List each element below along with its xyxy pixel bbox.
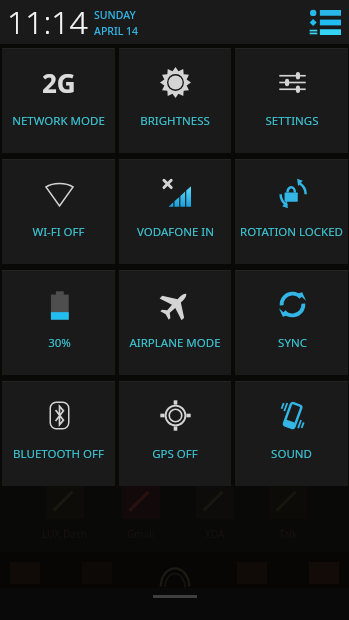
- button[interactable]: WI-FI OFF: [2, 159, 115, 264]
- staticText: BRIGHTNESS: [140, 113, 210, 129]
- staticText: 30%: [48, 335, 71, 351]
- staticText: 2G: [42, 65, 76, 100]
- staticText: GPS OFF: [152, 446, 198, 462]
- staticText: LUX Dash: [42, 527, 87, 541]
- staticText: ROTATION LOCKED: [240, 224, 343, 240]
- staticText: APRIL 14: [94, 24, 138, 38]
- button[interactable]: GPS OFF: [119, 381, 231, 486]
- button[interactable]: ROTATION LOCKED: [235, 159, 348, 264]
- button[interactable]: Notifications: [306, 2, 344, 42]
- staticText: BLUETOOTH OFF: [13, 446, 104, 462]
- button[interactable]: SYNC: [235, 270, 348, 375]
- staticText: 11:14: [7, 0, 88, 44]
- button[interactable]: 30%: [2, 270, 115, 375]
- staticText: XDA: [205, 527, 225, 541]
- button[interactable]: SOUND: [235, 381, 348, 486]
- button[interactable]: 2G: [2, 48, 115, 153]
- staticText: SUNDAY: [94, 8, 136, 22]
- button[interactable]: BLUETOOTH OFF: [2, 381, 115, 486]
- staticText: AIRPLANE MODE: [129, 335, 221, 351]
- staticText: WI-FI OFF: [32, 224, 85, 240]
- button[interactable]: BRIGHTNESS: [119, 48, 231, 153]
- staticText: SYNC: [278, 335, 307, 351]
- staticText: VODAFONE IN: [137, 224, 214, 240]
- staticText: Gmail: [127, 527, 155, 541]
- staticText: SETTINGS: [265, 113, 319, 129]
- staticText: SOUND: [271, 446, 312, 462]
- staticText: NETWORK MODE: [12, 113, 105, 129]
- button[interactable]: VODAFONE IN: [119, 159, 231, 264]
- staticText: Talk: [279, 527, 298, 541]
- button[interactable]: AIRPLANE MODE: [119, 270, 231, 375]
- button[interactable]: SETTINGS: [235, 48, 348, 153]
